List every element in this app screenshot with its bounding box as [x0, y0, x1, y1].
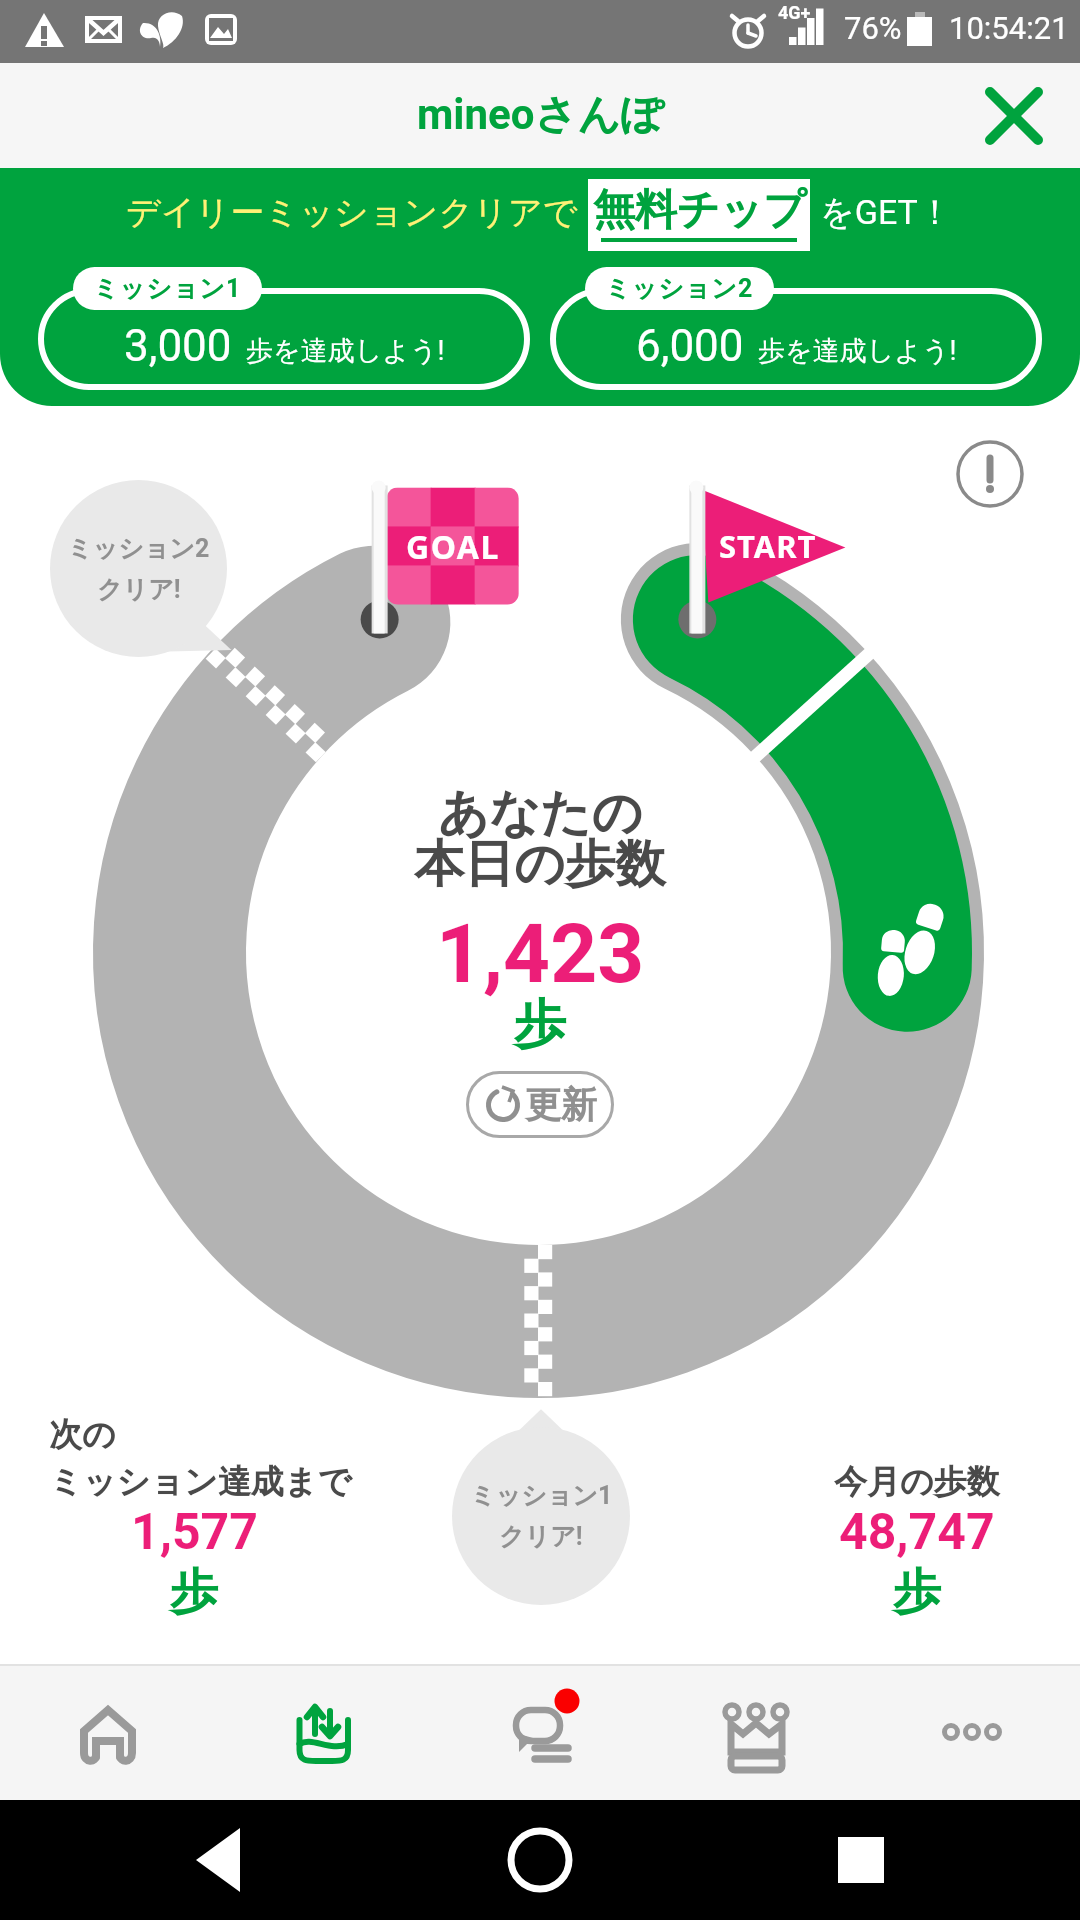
- staticText: ミッション2: [605, 273, 754, 304]
- staticText: ミッション達成まで: [49, 1461, 352, 1503]
- button[interactable]: Walk data: [216, 1664, 432, 1800]
- staticText: あなたの: [438, 782, 643, 845]
- staticText: 本日の歩数: [414, 833, 666, 896]
- staticText: クリア!: [499, 1521, 583, 1552]
- staticText: 1,577: [131, 1503, 258, 1562]
- staticText: 無料チップ: [593, 184, 806, 237]
- button[interactable]: 更新: [466, 1071, 614, 1138]
- button[interactable]: 3,000: [38, 288, 530, 390]
- staticText: ミッション1: [470, 1480, 613, 1511]
- button[interactable]: Home: [0, 1664, 216, 1800]
- staticText: 3,000: [124, 320, 232, 372]
- staticText: をGET！: [820, 191, 952, 234]
- staticText: 10:54:21: [949, 10, 1069, 46]
- staticText: ミッション1: [93, 273, 242, 304]
- staticText: 歩: [893, 1562, 941, 1622]
- staticText: START: [719, 525, 817, 567]
- staticText: 歩: [170, 1562, 218, 1622]
- button[interactable]: Messages: [432, 1664, 648, 1800]
- staticText: 6,000: [636, 320, 744, 372]
- staticText: 歩を達成しよう!: [758, 334, 957, 368]
- staticText: 歩: [514, 992, 566, 1058]
- staticText: GOAL: [406, 525, 500, 569]
- button[interactable]: Rewards: [648, 1664, 864, 1800]
- staticText: 48,747: [839, 1503, 995, 1562]
- staticText: 4G+: [778, 2, 811, 23]
- staticText: デイリーミッションクリアで: [126, 191, 578, 234]
- staticText: ミッション2: [67, 533, 210, 564]
- staticText: 歩を達成しよう!: [246, 334, 445, 368]
- staticText: 76%: [844, 10, 902, 46]
- staticText: 1,423: [436, 906, 645, 1002]
- staticText: 次の: [49, 1414, 116, 1456]
- button[interactable]: More: [864, 1664, 1080, 1800]
- button[interactable]: 6,000: [550, 288, 1042, 390]
- staticText: mineoさんぽ: [417, 89, 664, 142]
- button[interactable]: Information: [956, 440, 1024, 508]
- button[interactable]: Close: [974, 76, 1054, 156]
- staticText: 更新: [525, 1082, 597, 1127]
- staticText: 今月の歩数: [834, 1461, 1000, 1503]
- staticText: クリア!: [97, 574, 181, 605]
